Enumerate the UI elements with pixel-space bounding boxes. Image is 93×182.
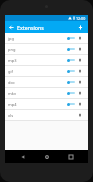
button[interactable]: png: [5, 44, 88, 55]
button[interactable]: Toggle: [66, 44, 74, 54]
button[interactable]: Toggle: [66, 88, 74, 98]
staticText: Extensions: [17, 24, 44, 31]
button[interactable]: mkv: [5, 88, 88, 99]
button[interactable]: Delete: [77, 79, 83, 85]
button[interactable]: Delete: [77, 112, 83, 118]
button[interactable]: Add: [74, 21, 86, 33]
staticText: mp3: [8, 58, 17, 63]
staticText: jpg: [8, 36, 14, 41]
staticText: gif: [8, 69, 13, 74]
button[interactable]: Back: [16, 150, 29, 163]
button[interactable]: Delete: [77, 57, 83, 63]
button[interactable]: mp4: [5, 99, 88, 110]
staticText: mp4: [8, 102, 17, 107]
button[interactable]: Toggle: [66, 77, 74, 87]
button[interactable]: Back: [5, 21, 17, 33]
button[interactable]: gif: [5, 66, 88, 77]
button[interactable]: Delete: [77, 35, 83, 41]
staticText: xls: [8, 113, 14, 118]
button[interactable]: Delete: [77, 90, 83, 96]
button[interactable]: Toggle: [66, 55, 74, 65]
button[interactable]: doc: [5, 77, 88, 88]
button[interactable]: Delete: [77, 68, 83, 74]
button[interactable]: Toggle: [66, 66, 74, 76]
button[interactable]: Delete: [77, 46, 83, 52]
button[interactable]: jpg: [5, 33, 88, 44]
button[interactable]: mp3: [5, 55, 88, 66]
staticText: mkv: [8, 91, 16, 96]
staticText: png: [8, 47, 16, 52]
button[interactable]: Toggle: [66, 99, 74, 109]
button[interactable]: xls: [5, 110, 88, 121]
button[interactable]: Recents: [64, 150, 77, 163]
button[interactable]: Toggle: [66, 33, 74, 43]
staticText: doc: [8, 80, 15, 85]
button[interactable]: Home: [40, 150, 53, 163]
button[interactable]: Delete: [77, 101, 83, 107]
staticText: 12:00: [76, 16, 86, 21]
